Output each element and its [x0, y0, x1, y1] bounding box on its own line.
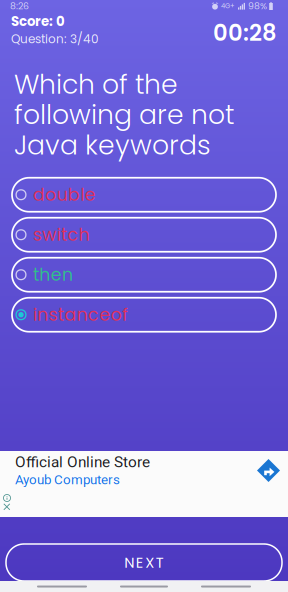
staticText: instanceof	[33, 303, 128, 327]
button[interactable]: double	[12, 178, 276, 212]
staticText: 98%	[248, 0, 267, 13]
staticText: then	[33, 263, 73, 287]
staticText: 4G+	[221, 1, 235, 11]
staticText: 8:26	[10, 0, 29, 13]
button[interactable]: NEXT	[6, 544, 282, 581]
button[interactable]: Official Online Store	[0, 451, 288, 517]
staticText: Question: 3/40	[11, 31, 99, 47]
button[interactable]: instanceof	[12, 298, 276, 332]
staticText: 00:28	[213, 17, 277, 49]
staticText: Official Online Store	[15, 453, 150, 471]
staticText: Which of the following are not Java keyw…	[14, 66, 234, 164]
staticText: Ayoub Computers	[15, 472, 120, 488]
staticText: Score: 0	[11, 12, 65, 31]
button[interactable]: switch	[12, 218, 276, 252]
staticText: double	[33, 183, 96, 207]
staticText: NEXT	[124, 552, 164, 573]
staticText: switch	[33, 223, 90, 247]
button[interactable]: then	[12, 258, 276, 292]
